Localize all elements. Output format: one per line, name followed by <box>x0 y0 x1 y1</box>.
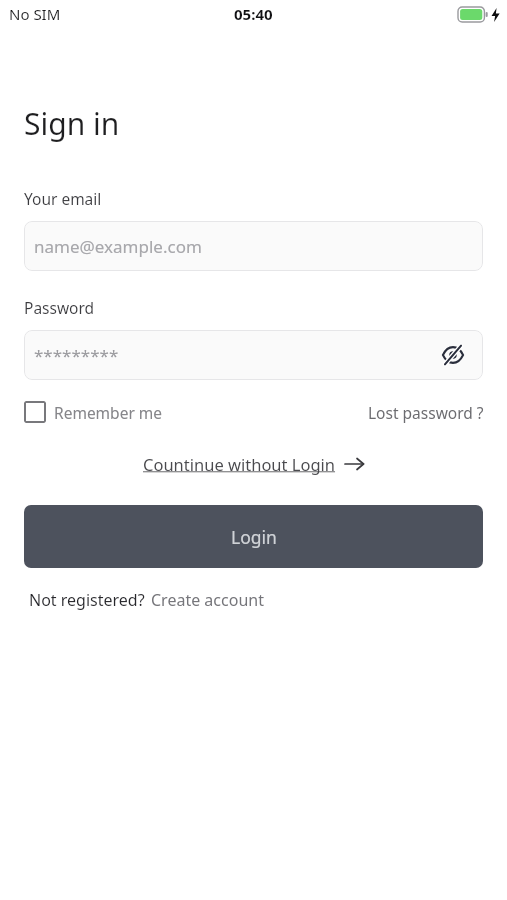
staticText: Create account <box>151 589 264 611</box>
staticText: Password <box>24 297 95 318</box>
button[interactable]: Login <box>24 505 483 568</box>
staticText: 05:40 <box>234 4 273 24</box>
staticText: Lost password ? <box>368 402 484 423</box>
button[interactable]: name@example.com <box>24 221 483 271</box>
staticText: Your email <box>24 188 102 209</box>
staticText: name@example.com <box>34 235 202 258</box>
button[interactable]: Countinue without Login <box>143 453 364 475</box>
staticText: Login <box>231 525 277 549</box>
button[interactable]: ********* <box>24 330 483 380</box>
staticText: Not registered? <box>29 589 145 611</box>
button[interactable]: Remember me <box>24 401 167 423</box>
button[interactable]: Lost password ? <box>368 402 484 423</box>
staticText: No SIM <box>9 4 61 24</box>
staticText: ********* <box>34 344 119 367</box>
button[interactable]: Toggle password visibility <box>440 342 466 368</box>
staticText: Sign in <box>24 103 120 144</box>
staticText: Countinue without Login <box>143 453 336 475</box>
staticText: Remember me <box>54 402 163 423</box>
button[interactable]: Not registered? <box>29 589 264 611</box>
